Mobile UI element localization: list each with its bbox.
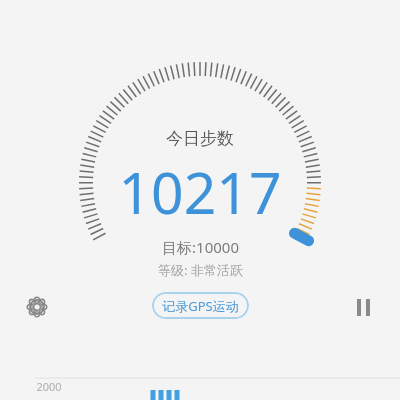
staticText: 目标:10000 (162, 237, 239, 257)
button[interactable]: Pause (344, 288, 382, 326)
staticText: 今日步数 (166, 128, 234, 149)
button[interactable]: 记录GPS运动 (152, 292, 249, 319)
staticText: 10217 (118, 153, 282, 231)
staticText: 记录GPS运动 (162, 297, 239, 315)
button[interactable]: Settings (18, 288, 56, 326)
staticText: 等级: 非常活跃 (158, 261, 243, 279)
staticText: 2000 (36, 379, 62, 394)
